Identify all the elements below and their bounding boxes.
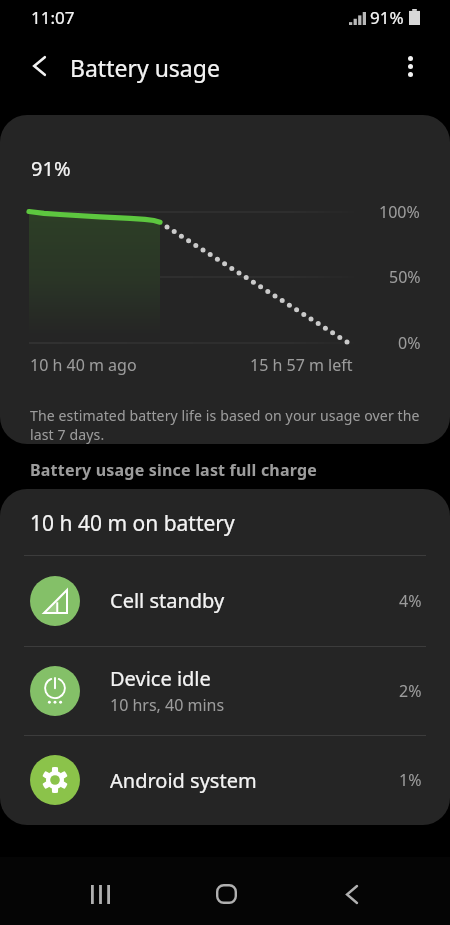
staticText: 11:07 — [31, 6, 75, 29]
staticText: 15 h 57 m left — [250, 354, 353, 376]
staticText: 50% — [389, 266, 421, 288]
staticText: Device idle — [110, 665, 211, 692]
button[interactable]: Home — [196, 857, 256, 925]
staticText: 10 hrs, 40 mins — [110, 694, 225, 716]
button[interactable]: More options — [388, 44, 432, 88]
button[interactable]: Cell standby — [0, 555, 450, 646]
staticText: 2% — [399, 680, 422, 702]
staticText: 0% — [398, 332, 421, 354]
button[interactable]: Back — [19, 46, 59, 86]
staticText: 91% — [370, 6, 404, 29]
staticText: Battery usage since last full charge — [30, 459, 318, 481]
staticText: The estimated battery life is based on y… — [30, 406, 434, 444]
button[interactable]: Back — [322, 857, 382, 925]
button[interactable]: Android system — [0, 735, 450, 825]
button[interactable]: Device idle — [0, 646, 450, 735]
button[interactable]: Recents — [70, 857, 130, 925]
staticText: Android system — [110, 767, 257, 794]
staticText: 4% — [399, 590, 422, 612]
staticText: 10 h 40 m on battery — [30, 509, 235, 538]
staticText: 91% — [31, 155, 71, 182]
staticText: Cell standby — [110, 587, 225, 614]
staticText: 10 h 40 m ago — [30, 354, 137, 376]
staticText: Battery usage — [70, 52, 220, 83]
staticText: 1% — [399, 769, 422, 791]
staticText: 100% — [379, 201, 420, 223]
